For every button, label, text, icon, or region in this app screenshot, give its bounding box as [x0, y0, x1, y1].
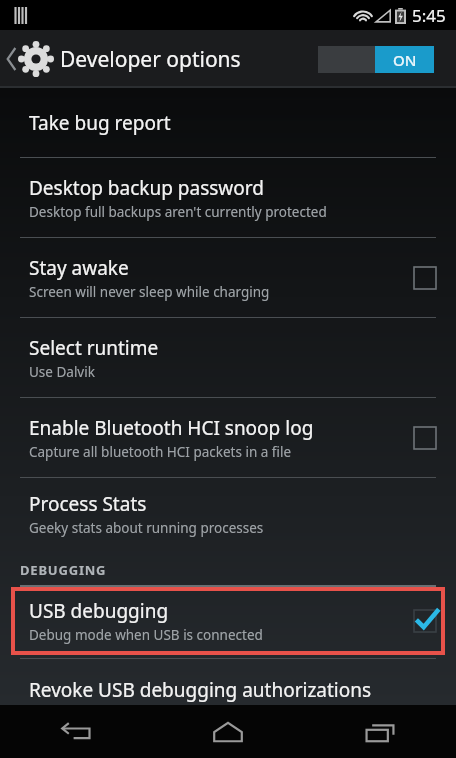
- staticText: 5:45: [412, 4, 446, 27]
- staticText: Stay awake: [29, 255, 129, 281]
- staticText: Enable Bluetooth HCI snoop log: [29, 415, 314, 441]
- button[interactable]: Recent apps: [304, 705, 456, 758]
- button[interactable]: Revoke USB debugging authorizations: [0, 677, 456, 703]
- staticText: Desktop full backups aren't currently pr…: [29, 203, 327, 221]
- staticText: Use Dalvik: [29, 363, 95, 381]
- staticText: Capture all bluetooth HCI packets in a f…: [29, 443, 292, 461]
- staticText: Take bug report: [29, 110, 171, 136]
- button[interactable]: USB debugging: [13, 589, 443, 653]
- button[interactable]: Select runtime: [0, 318, 456, 397]
- button[interactable]: Desktop backup password: [0, 158, 456, 237]
- staticText: Screen will never sleep while charging: [29, 283, 270, 301]
- staticText: Select runtime: [29, 335, 159, 361]
- staticText: Debug mode when USB is connected: [29, 626, 263, 644]
- button[interactable]: ON: [318, 46, 434, 73]
- staticText: Geeky stats about running processes: [29, 519, 264, 537]
- staticText: USB debugging: [29, 598, 169, 624]
- staticText: DEBUGGING: [20, 561, 107, 579]
- button[interactable]: Back: [0, 705, 152, 758]
- button[interactable]: Stay awake: [0, 238, 456, 317]
- staticText: ON: [393, 50, 417, 70]
- staticText: Revoke USB debugging authorizations: [29, 677, 372, 703]
- staticText: Process Stats: [29, 491, 147, 517]
- button[interactable]: Back: [0, 30, 59, 88]
- button[interactable]: Home: [152, 705, 304, 758]
- staticText: Developer options: [60, 45, 241, 74]
- button[interactable]: Take bug report: [0, 88, 456, 157]
- button[interactable]: Enable Bluetooth HCI snoop log: [0, 398, 456, 477]
- button[interactable]: Process Stats: [0, 478, 456, 550]
- staticText: Desktop backup password: [29, 175, 264, 201]
